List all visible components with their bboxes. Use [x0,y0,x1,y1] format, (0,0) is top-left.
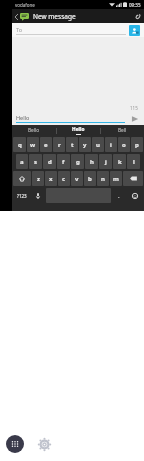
button[interactable]: d [43,154,56,169]
button[interactable]: b [84,171,96,186]
staticText: ?123 [17,193,27,199]
staticText: u [96,141,100,149]
staticText: f [62,158,65,166]
staticText: To [16,26,23,33]
button[interactable]: c [58,171,70,186]
button[interactable]: q [13,137,26,152]
staticText: 115 [130,105,138,111]
staticText: New message [33,12,76,21]
button[interactable]: h [85,154,98,169]
button[interactable]: Emoji [127,188,143,203]
button[interactable]: Hello [57,125,100,136]
staticText: n [101,175,105,183]
button[interactable]: Add recipient from contacts [129,25,140,36]
staticText: i [110,141,112,149]
staticText: k [118,158,122,166]
staticText: Bell [118,127,127,134]
button[interactable]: k [113,154,126,169]
button[interactable]: Backspace [123,171,143,186]
staticText: o [122,141,126,149]
staticText: r [58,141,61,149]
button[interactable]: w [27,137,39,152]
button[interactable]: Send [128,112,141,125]
staticText: v [75,175,79,183]
button[interactable]: Bell [101,125,144,136]
staticText: b [88,175,92,183]
staticText: vodafone [15,2,35,8]
staticText: h [90,158,94,166]
button[interactable]: l [127,154,140,169]
button[interactable]: u [92,137,104,152]
staticText: q [18,141,22,149]
staticText: m [113,175,119,183]
button[interactable]: t [66,137,78,152]
staticText: t [71,141,74,149]
button[interactable]: Messaging, navigate up [12,12,31,21]
staticText: 09:35 [129,2,141,8]
button[interactable]: y [79,137,91,152]
button[interactable]: ?123 [13,188,30,203]
staticText: c [62,175,66,183]
button[interactable]: r [53,137,65,152]
staticText: e [44,141,48,149]
staticText: y [83,141,87,149]
staticText: . [118,192,120,200]
button[interactable]: a [16,154,28,169]
button[interactable]: m [110,171,122,186]
button[interactable]: . [112,188,126,203]
button[interactable]: To [16,26,126,35]
button[interactable]: Attach [130,9,144,23]
staticText: s [34,158,38,166]
button[interactable]: g [71,154,84,169]
button[interactable]: Bello [12,125,56,136]
staticText: l [133,158,135,166]
button[interactable]: Voice input [31,188,45,203]
staticText: z [37,175,40,183]
button[interactable]: Hello [16,114,125,123]
button[interactable]: Shift [13,171,31,186]
button[interactable]: z [32,171,44,186]
staticText: Hello [72,126,85,133]
button[interactable]: p [131,137,143,152]
staticText: x [49,175,53,183]
staticText: Bello [28,127,40,134]
button[interactable]: i [105,137,117,152]
button[interactable]: j [99,154,112,169]
staticText: p [135,141,139,149]
button[interactable]: e [40,137,52,152]
staticText: Hello [16,114,30,121]
button[interactable]: f [57,154,70,169]
staticText: j [105,158,107,166]
button[interactable]: s [29,154,42,169]
button[interactable]: All apps [6,435,24,453]
button[interactable]: x [45,171,57,186]
staticText: a [20,158,24,166]
staticText: g [76,158,80,166]
button[interactable]: Settings [36,436,52,452]
button[interactable]: v [71,171,83,186]
button[interactable]: n [97,171,109,186]
button[interactable]: o [118,137,130,152]
staticText: d [48,158,52,166]
staticText: w [30,141,36,149]
